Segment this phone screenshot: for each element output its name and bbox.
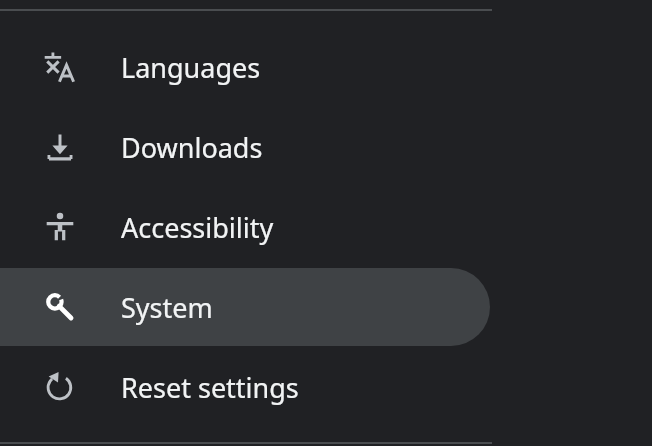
staticText: Languages xyxy=(121,49,261,86)
button[interactable]: Downloads xyxy=(0,108,490,186)
button[interactable]: System xyxy=(0,268,490,346)
staticText: System xyxy=(121,289,213,326)
staticText: Reset settings xyxy=(121,369,299,406)
button[interactable]: Accessibility xyxy=(0,188,490,266)
button[interactable]: Languages xyxy=(0,28,490,106)
staticText: Downloads xyxy=(121,129,263,166)
staticText: Accessibility xyxy=(121,209,274,246)
button[interactable]: Reset settings xyxy=(0,348,490,426)
